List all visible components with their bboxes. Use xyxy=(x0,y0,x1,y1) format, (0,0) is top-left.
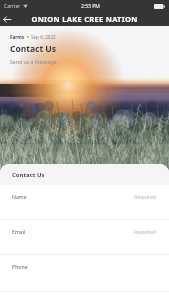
button[interactable]: Phone xyxy=(0,255,169,292)
button[interactable]: Name xyxy=(0,185,169,220)
staticText: Phone xyxy=(12,263,28,270)
staticText: Email xyxy=(12,228,26,235)
staticText: Required xyxy=(134,193,157,200)
staticText: Name xyxy=(12,193,27,200)
staticText: Carrier xyxy=(4,3,21,10)
staticText: Contact Us xyxy=(10,43,57,55)
staticText: 2:53 PM xyxy=(81,3,100,10)
button[interactable]: Back xyxy=(0,12,14,26)
staticText: Contact Us xyxy=(12,171,45,179)
staticText: Farms xyxy=(10,34,25,40)
staticText: Send us a message xyxy=(10,58,57,65)
button[interactable]: Email xyxy=(0,220,169,255)
staticText: Sep 6, 2022 xyxy=(31,34,56,40)
staticText: Required xyxy=(134,228,157,235)
staticText: ONION LAKE CREE NATION xyxy=(0,14,169,24)
